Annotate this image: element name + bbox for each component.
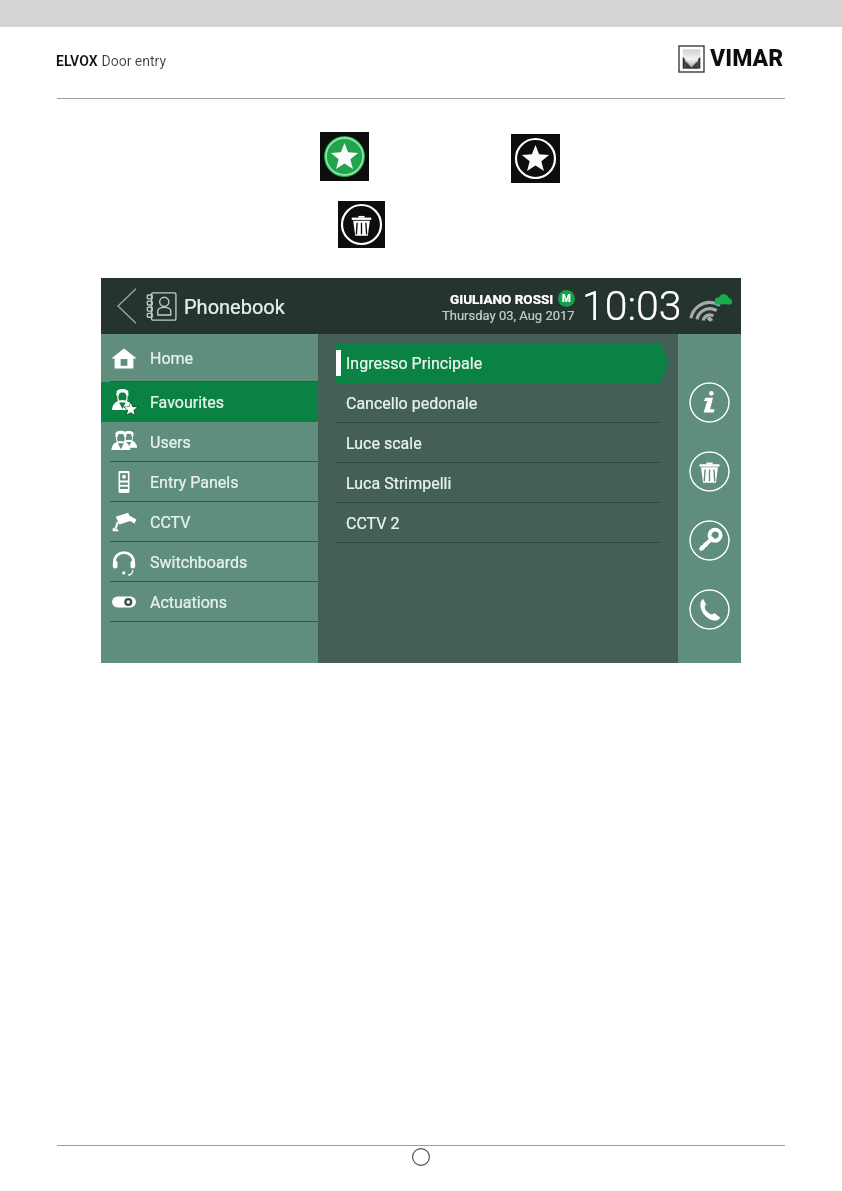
button[interactable]: Unlock door xyxy=(689,520,730,561)
staticText: GIULIANO ROSSI xyxy=(450,291,554,307)
staticText: Actuations xyxy=(150,593,227,612)
staticText: VIMAR xyxy=(710,45,784,72)
button[interactable]: CCTV 2 xyxy=(318,503,678,543)
button[interactable]: Cancello pedonale xyxy=(318,383,678,423)
button[interactable]: Back xyxy=(117,288,137,324)
staticText: ELVOX xyxy=(56,53,98,69)
staticText: Luce scale xyxy=(346,434,422,453)
button[interactable]: Delete xyxy=(689,451,730,492)
button[interactable]: Luce scale xyxy=(318,423,678,463)
staticText: CCTV xyxy=(150,513,191,532)
staticText: Switchboards xyxy=(150,553,248,572)
staticText: CCTV 2 xyxy=(346,514,400,533)
staticText: Cancello pedonale xyxy=(346,394,478,413)
button[interactable]: Entry Panels xyxy=(101,462,318,502)
staticText: Luca Strimpelli xyxy=(346,474,452,493)
button[interactable]: Users xyxy=(101,422,318,462)
staticText: Home xyxy=(150,349,194,368)
button[interactable]: Switchboards xyxy=(101,542,318,582)
staticText: Entry Panels xyxy=(150,473,239,492)
button[interactable]: Info xyxy=(689,382,730,423)
staticText: Thursday 03, Aug 2017 xyxy=(442,308,575,323)
button[interactable]: Home xyxy=(101,334,318,382)
staticText: 10:03 xyxy=(582,282,682,330)
staticText: Door entry xyxy=(98,53,167,69)
button[interactable]: Favourites xyxy=(101,382,318,422)
button[interactable]: Ingresso Principale xyxy=(318,343,678,383)
staticText: M xyxy=(562,293,571,305)
staticText: Users xyxy=(150,433,191,452)
button[interactable]: CCTV xyxy=(101,502,318,542)
staticText: Phonebook xyxy=(184,295,285,318)
staticText: Ingresso Principale xyxy=(346,354,483,373)
button[interactable]: Actuations xyxy=(101,582,318,622)
staticText: Favourites xyxy=(150,393,225,412)
button[interactable]: Call xyxy=(689,589,730,630)
button[interactable]: Luca Strimpelli xyxy=(318,463,678,503)
